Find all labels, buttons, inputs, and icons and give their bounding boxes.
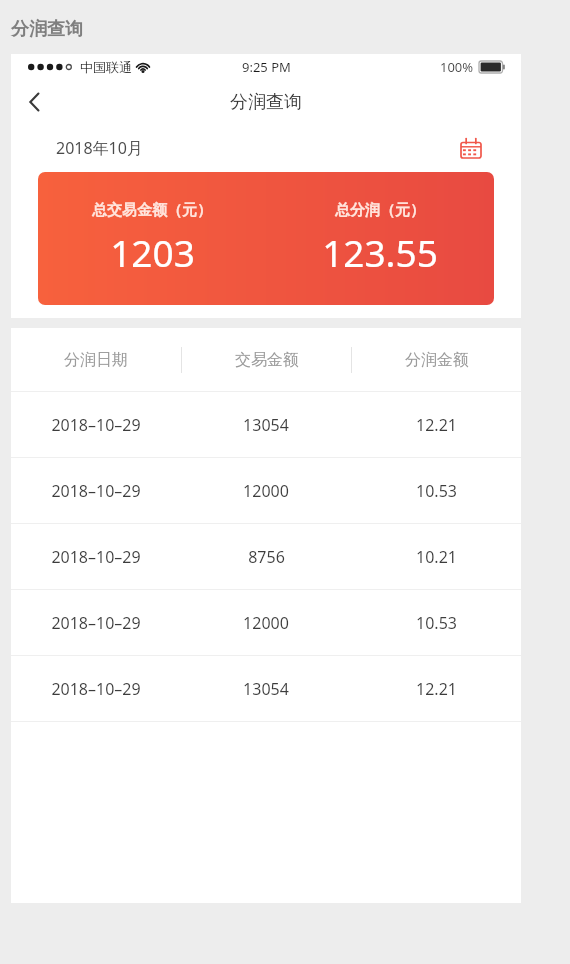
staticText: 2018年10月 <box>56 137 143 159</box>
staticText: 8756 <box>248 546 285 568</box>
staticText: 1203 <box>110 227 195 277</box>
staticText: 中国联通 <box>80 59 132 75</box>
staticText: 总交易金额（元） <box>92 201 212 220</box>
staticText: 12000 <box>243 480 289 502</box>
staticText: 2018–10–29 <box>51 546 141 568</box>
staticText: 分润查询 <box>11 18 83 41</box>
staticText: 2018–10–29 <box>51 678 141 700</box>
staticText: 12000 <box>243 612 289 634</box>
staticText: 12.21 <box>416 678 457 700</box>
staticText: 交易金额 <box>235 350 299 370</box>
button[interactable]: 2018–10–29 <box>11 458 521 524</box>
staticText: 12.21 <box>416 414 457 436</box>
button[interactable]: 2018–10–29 <box>11 656 521 722</box>
staticText: 123.55 <box>322 227 438 277</box>
staticText: 100% <box>440 58 474 76</box>
staticText: 13054 <box>243 678 289 700</box>
staticText: 10.21 <box>416 546 457 568</box>
staticText: 2018–10–29 <box>51 414 141 436</box>
staticText: 9:25 PM <box>242 58 291 76</box>
staticText: 2018–10–29 <box>51 612 141 634</box>
staticText: 10.53 <box>416 612 457 634</box>
staticText: 13054 <box>243 414 289 436</box>
button[interactable]: 2018–10–29 <box>11 392 521 458</box>
button[interactable]: 总交易金额（元） <box>38 172 494 305</box>
staticText: 2018–10–29 <box>51 480 141 502</box>
staticText: 10.53 <box>416 480 457 502</box>
staticText: 分润查询 <box>230 91 302 114</box>
button[interactable]: 2018–10–29 <box>11 524 521 590</box>
button[interactable]: 2018–10–29 <box>11 590 521 656</box>
button[interactable]: Pick month <box>455 132 487 164</box>
staticText: 分润金额 <box>405 350 469 370</box>
staticText: 分润日期 <box>64 350 128 370</box>
staticText: 总分润（元） <box>335 201 425 220</box>
button[interactable]: Back <box>11 80 57 124</box>
